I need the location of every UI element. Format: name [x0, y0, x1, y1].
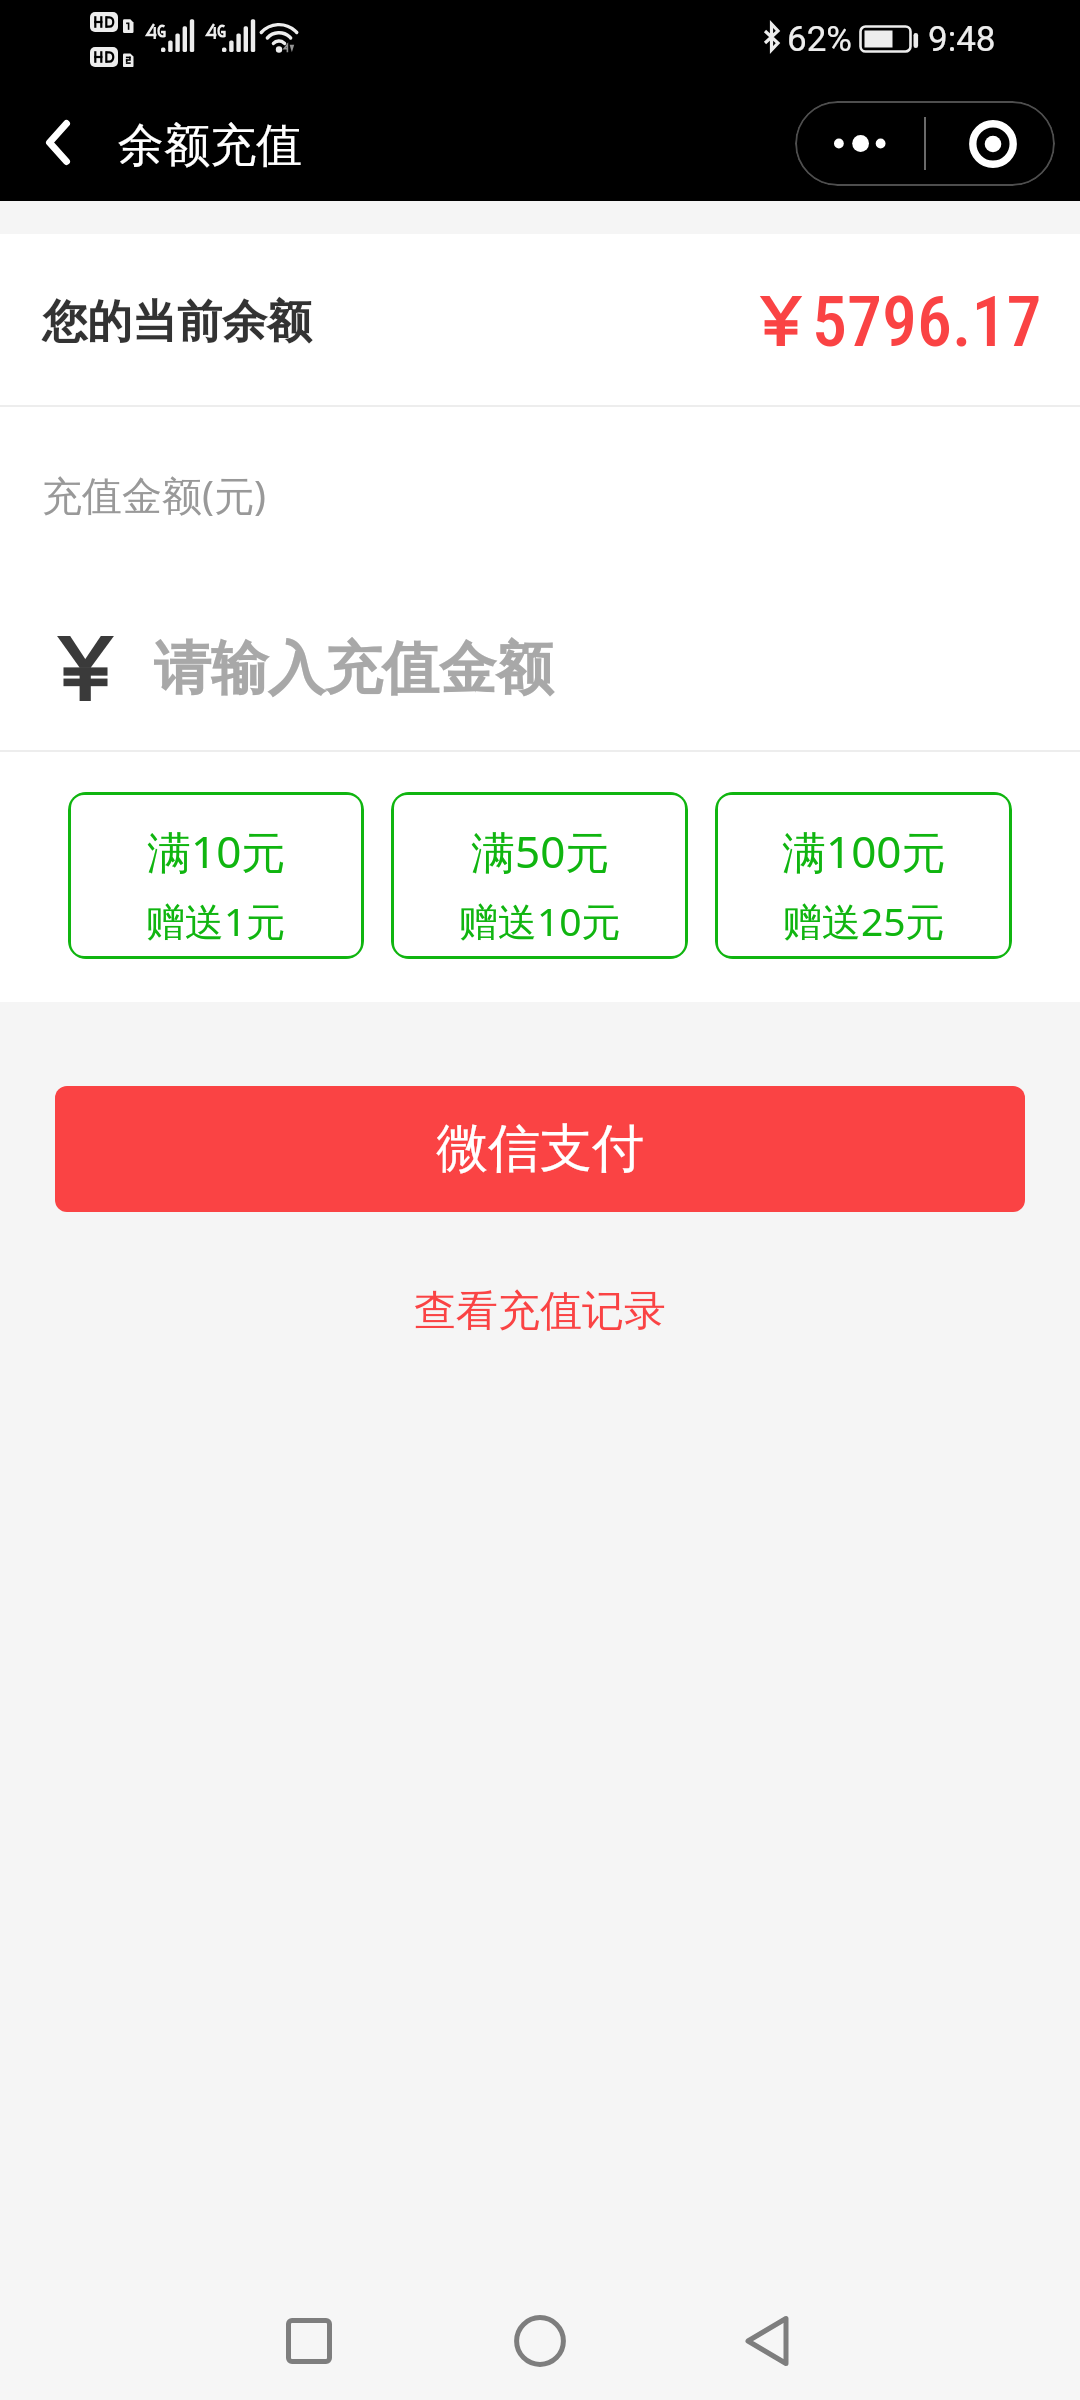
staticText: 您的当前余额: [42, 294, 312, 351]
button[interactable]: Close mini program: [925, 101, 1055, 186]
button[interactable]: 微信支付: [55, 1086, 1025, 1212]
staticText: 满10元: [147, 821, 286, 881]
button[interactable]: Home: [460, 2280, 620, 2400]
button[interactable]: 满100元: [715, 792, 1012, 959]
staticText: 满50元: [471, 821, 610, 881]
staticText: 微信支付: [436, 1116, 644, 1182]
staticText: 62%: [787, 19, 852, 60]
button[interactable]: 查看充值记录: [384, 1275, 696, 1348]
staticText: 赠送10元: [459, 894, 621, 947]
staticText: 满100元: [782, 821, 946, 881]
staticText: 5796.17: [812, 281, 1042, 363]
staticText: 余额充值: [118, 117, 302, 175]
staticText: 查看充值记录: [414, 1285, 666, 1338]
staticText: 赠送25元: [783, 894, 945, 947]
button[interactable]: Recent apps: [229, 2280, 389, 2400]
staticText: 9:48: [928, 19, 996, 60]
staticText: 充值金额(元): [42, 467, 266, 522]
button[interactable]: Back: [687, 2280, 847, 2400]
button[interactable]: More options: [795, 101, 925, 186]
button[interactable]: 满10元: [68, 792, 364, 959]
staticText: 请输入充值金额: [154, 633, 553, 705]
staticText: 赠送1元: [146, 894, 286, 947]
button[interactable]: 满50元: [391, 792, 688, 959]
button[interactable]: Back: [13, 100, 103, 184]
